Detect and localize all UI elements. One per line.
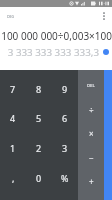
staticText: % <box>61 172 69 184</box>
button[interactable]: 3 <box>52 133 78 163</box>
staticText: × <box>89 128 94 139</box>
button[interactable]: 4 <box>0 103 26 133</box>
staticText: 0 <box>36 172 42 184</box>
button[interactable]: − <box>78 145 104 169</box>
button[interactable]: 6 <box>52 103 78 133</box>
button[interactable]: 8 <box>26 74 52 103</box>
staticText: DEG <box>7 14 15 19</box>
staticText: 100 000 000÷0,003×100 <box>1 29 112 43</box>
button[interactable]: × <box>78 121 104 145</box>
staticText: ÷ <box>89 104 94 115</box>
staticText: 7 <box>10 83 16 95</box>
staticText: 3 <box>62 142 68 154</box>
staticText: 6 <box>62 112 68 124</box>
button[interactable]: DEL <box>78 74 104 97</box>
staticText: 4 <box>10 112 16 124</box>
button[interactable]: 5 <box>26 103 52 133</box>
button[interactable]: More options <box>96 8 112 24</box>
staticText: 2 <box>36 142 42 154</box>
button[interactable]: ÷ <box>78 97 104 121</box>
button[interactable]: Expand result <box>100 46 112 58</box>
button[interactable]: % <box>52 163 78 193</box>
button[interactable]: 9 <box>52 74 78 103</box>
button[interactable]: 1 <box>0 133 26 163</box>
staticText: DEL <box>87 83 95 89</box>
staticText: + <box>89 176 94 187</box>
button[interactable]: 7 <box>0 74 26 103</box>
staticText: , <box>12 172 15 184</box>
button[interactable]: , <box>0 163 26 193</box>
staticText: 9 <box>62 83 68 95</box>
staticText: 1 <box>10 142 16 154</box>
button[interactable]: 0 <box>26 163 52 193</box>
button[interactable]: + <box>78 169 104 193</box>
staticText: 3 333 333 333 333,3 <box>7 46 99 59</box>
button[interactable]: 2 <box>26 133 52 163</box>
staticText: 5 <box>36 112 42 124</box>
button[interactable]: DEG <box>7 7 15 25</box>
staticText: − <box>89 152 94 163</box>
staticText: 8 <box>36 83 42 95</box>
